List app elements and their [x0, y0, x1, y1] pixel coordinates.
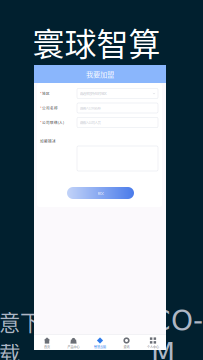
- staticText: 资讯: [123, 345, 129, 349]
- staticText: COM: [151, 304, 203, 360]
- staticText: 公司联络(人): [42, 120, 64, 125]
- staticText: 我要加盟: [86, 69, 114, 79]
- staticText: 加盟描述: [40, 138, 56, 144]
- staticText: *: [40, 120, 42, 125]
- button[interactable]: 资讯: [113, 334, 139, 350]
- staticText: 产品中心: [67, 345, 79, 349]
- staticText: 寰球智算: [32, 19, 160, 65]
- staticText: 个人中心: [147, 345, 159, 349]
- staticText: 请输入公司名称: [79, 105, 100, 110]
- staticText: 提交: [97, 190, 103, 195]
- staticText: 意下载: [0, 306, 41, 360]
- button[interactable]: 个人中心: [140, 334, 166, 350]
- button[interactable]: 产品中心: [60, 334, 86, 350]
- button[interactable]: 首页: [34, 334, 60, 350]
- button[interactable]: 提交: [67, 187, 134, 199]
- staticText: 请输入公司人员: [79, 120, 100, 125]
- staticText: 智慧云脑: [94, 345, 106, 349]
- staticText: *: [40, 91, 42, 96]
- staticText: 地区: [42, 91, 50, 96]
- staticText: *: [40, 105, 42, 111]
- staticText: 公司名称: [42, 105, 58, 111]
- button[interactable]: 智慧云脑: [87, 334, 113, 350]
- staticText: 首页: [44, 345, 50, 349]
- staticText: 请选择您所在的地区: [79, 91, 106, 96]
